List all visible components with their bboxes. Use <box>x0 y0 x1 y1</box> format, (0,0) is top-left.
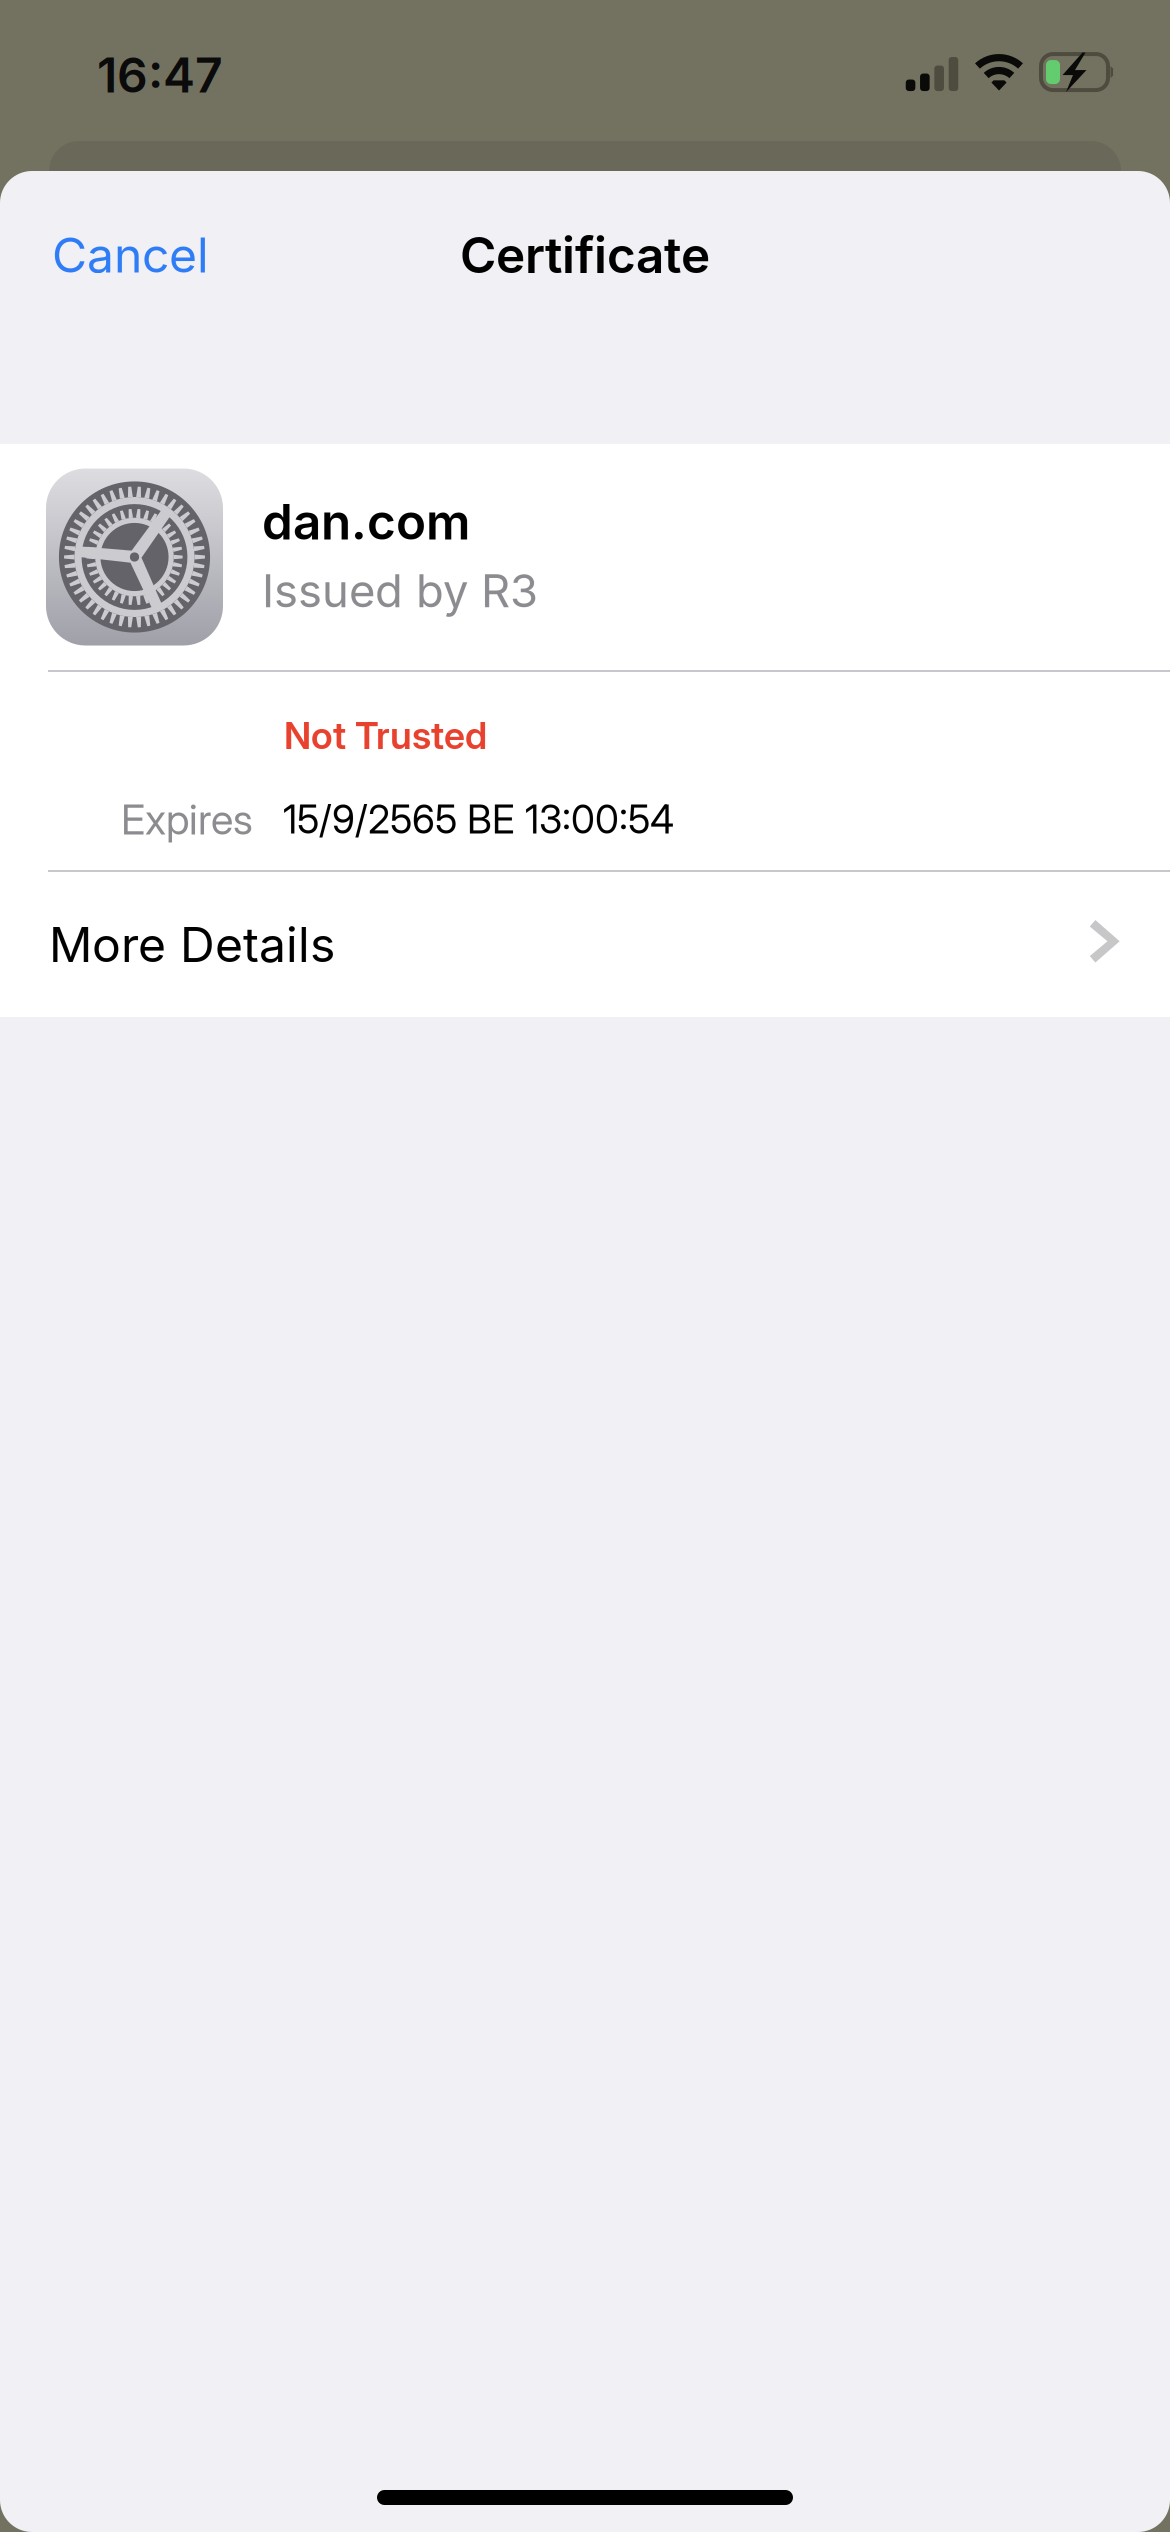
staticText: dan.com <box>262 492 470 551</box>
staticText: Issued by R3 <box>262 563 538 618</box>
staticText: Certificate <box>460 225 710 285</box>
button[interactable]: Cancel <box>0 216 249 399</box>
staticText: Not Trusted <box>284 713 487 758</box>
staticText: 15/9/2565 BE 13:00:54 <box>283 796 674 843</box>
staticText: More Details <box>49 915 335 974</box>
staticText: Expires <box>121 794 253 844</box>
staticText: Cancel <box>52 226 209 284</box>
staticText: 16:47 <box>97 46 223 104</box>
button[interactable]: More Details <box>0 872 1170 1017</box>
